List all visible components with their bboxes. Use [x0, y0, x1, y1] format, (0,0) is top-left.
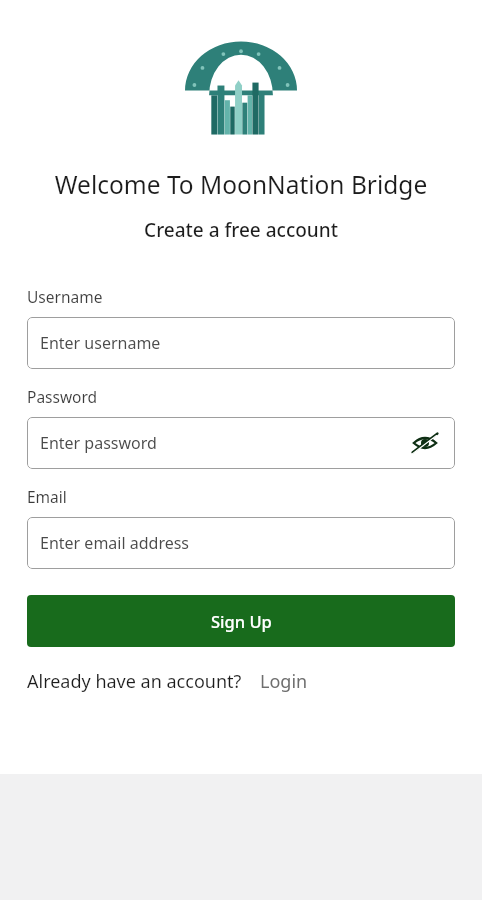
- staticText: Create a free account: [0, 217, 482, 243]
- staticText: Password: [27, 386, 98, 407]
- staticText: Sign Up: [211, 610, 272, 632]
- button[interactable]: Login: [260, 669, 308, 694]
- button[interactable]: Enter password: [27, 417, 455, 469]
- staticText: Welcome To MoonNation Bridge: [0, 168, 482, 201]
- staticText: Email: [27, 486, 67, 507]
- staticText: Enter email address: [40, 532, 190, 554]
- staticText: Enter username: [40, 332, 161, 354]
- staticText: Already have an account?: [27, 669, 242, 694]
- staticText: Login: [260, 669, 308, 694]
- button[interactable]: Show password: [408, 426, 442, 460]
- button[interactable]: Sign Up: [27, 595, 455, 647]
- button[interactable]: Enter username: [27, 317, 455, 369]
- button[interactable]: Enter email address: [27, 517, 455, 569]
- staticText: Enter password: [40, 432, 157, 454]
- staticText: Username: [27, 286, 103, 307]
